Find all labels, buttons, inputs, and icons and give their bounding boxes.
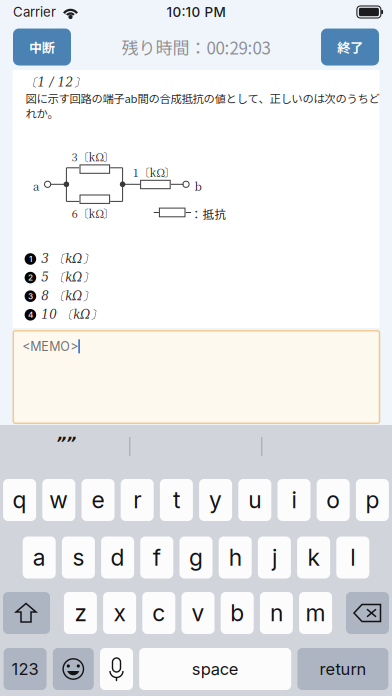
button[interactable]: f	[140, 536, 173, 578]
button[interactable]: v	[181, 592, 214, 634]
button[interactable]: z	[64, 592, 97, 634]
button[interactable]: m	[299, 592, 332, 634]
button[interactable]: l	[336, 536, 369, 578]
staticText: s	[72, 544, 84, 571]
button[interactable]: Delete	[346, 592, 389, 634]
staticText: p	[365, 486, 379, 514]
button[interactable]: b	[221, 592, 254, 634]
staticText: n	[270, 599, 283, 627]
button[interactable]: p	[356, 479, 389, 521]
staticText: a	[33, 544, 46, 571]
staticText: w	[49, 486, 68, 514]
staticText: a	[33, 177, 39, 194]
button[interactable]: w	[42, 479, 75, 521]
button[interactable]: e	[81, 479, 114, 521]
staticText: f	[153, 544, 161, 571]
staticText: j	[272, 544, 277, 571]
staticText: 1	[29, 254, 32, 264]
staticText: o	[326, 486, 340, 514]
staticText: 123	[12, 659, 39, 679]
staticText: l	[350, 544, 355, 571]
staticText: 図に示す回路の端子ab間の合成抵抗の値として、正しいのは次のうちど	[26, 90, 380, 106]
button[interactable]: x	[103, 592, 136, 634]
staticText: 10:10 PM	[166, 4, 225, 20]
button[interactable]: return	[297, 648, 388, 690]
staticText: 1〔kΩ〕	[133, 164, 176, 180]
staticText: g	[189, 544, 203, 571]
staticText: 2	[28, 273, 33, 282]
staticText: x	[114, 599, 126, 627]
staticText: v	[191, 599, 204, 627]
staticText: b	[195, 177, 202, 194]
button[interactable]: Dictation	[100, 648, 133, 690]
staticText: r	[133, 486, 141, 514]
button[interactable]: i	[277, 479, 310, 521]
button[interactable]: Emoji	[53, 648, 94, 690]
staticText: h	[229, 544, 242, 571]
staticText: e	[91, 486, 104, 514]
staticText: 〔1 / 12〕	[26, 75, 86, 90]
button[interactable]: k	[297, 536, 330, 578]
staticText: i	[291, 486, 296, 514]
staticText: m	[306, 599, 326, 627]
staticText: 10 〔kΩ〕	[41, 307, 102, 322]
button[interactable]: Shift	[3, 592, 50, 634]
button[interactable]: 123	[4, 648, 47, 690]
staticText: 中断	[29, 37, 55, 56]
staticText: t	[173, 486, 180, 514]
button[interactable]: h	[219, 536, 252, 578]
staticText: 3	[28, 291, 33, 301]
staticText: 8 〔kΩ〕	[41, 289, 94, 304]
staticText: k	[308, 544, 320, 571]
staticText: d	[111, 544, 125, 571]
staticText: 3 〔kΩ〕	[41, 251, 94, 266]
staticText: q	[13, 486, 27, 514]
button[interactable]: c	[142, 592, 175, 634]
button[interactable]: j	[258, 536, 291, 578]
staticText: b	[230, 599, 244, 627]
staticText: z	[74, 599, 86, 627]
button[interactable]: q	[3, 479, 36, 521]
button[interactable]: n	[260, 592, 293, 634]
staticText: 3〔kΩ〕	[72, 148, 115, 164]
staticText: ：抵抗	[191, 205, 227, 222]
staticText: 残り時間：00:29:03	[121, 35, 270, 59]
staticText: 4	[28, 310, 33, 320]
button[interactable]: o	[317, 479, 350, 521]
button[interactable]: t	[160, 479, 193, 521]
button[interactable]: d	[101, 536, 134, 578]
staticText: 終了	[337, 37, 363, 56]
staticText: れか。	[26, 105, 59, 121]
button[interactable]: 終了	[321, 28, 379, 65]
staticText: y	[209, 486, 222, 514]
staticText: 6〔kΩ〕	[72, 205, 115, 221]
button[interactable]: y	[199, 479, 232, 521]
staticText: c	[152, 599, 165, 627]
button[interactable]: a	[23, 536, 56, 578]
button[interactable]: r	[121, 479, 154, 521]
staticText: 5 〔kΩ〕	[41, 270, 94, 285]
button[interactable]: 中断	[13, 28, 71, 65]
staticText: <MEMO>	[22, 339, 78, 354]
staticText: return	[319, 659, 366, 679]
button[interactable]: u	[238, 479, 271, 521]
button[interactable]: space	[139, 648, 291, 690]
staticText: u	[248, 486, 261, 514]
staticText: Carrier	[13, 4, 56, 20]
button[interactable]: s	[62, 536, 95, 578]
button[interactable]: g	[179, 536, 212, 578]
staticText: ””	[56, 434, 76, 453]
staticText: space	[192, 659, 239, 679]
